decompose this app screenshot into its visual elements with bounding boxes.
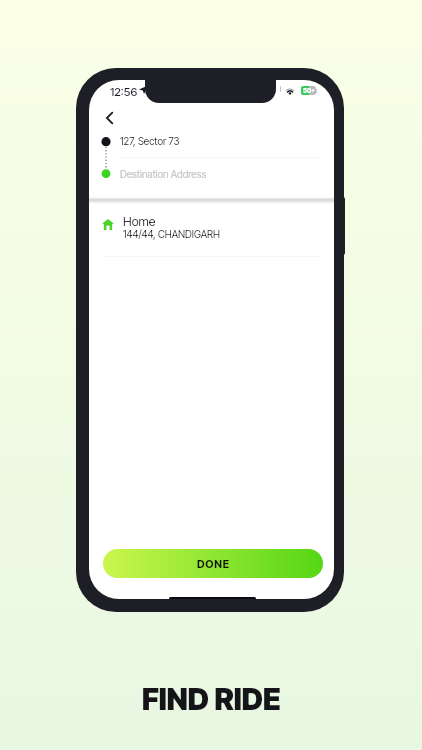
staticText: Destination Address [120,168,207,180]
button[interactable]: Home [89,210,334,257]
staticText: 144/44, CHANDIGARH [123,228,220,240]
staticText: 12:56 [110,85,138,99]
button[interactable]: DONE [103,549,323,578]
staticText: Home [123,214,156,229]
staticText: 50 [303,87,312,95]
staticText: 127, Sector 73 [120,135,180,147]
button[interactable]: Back [97,106,121,130]
staticText: DONE [197,557,230,570]
staticText: FIND RIDE [142,681,281,717]
